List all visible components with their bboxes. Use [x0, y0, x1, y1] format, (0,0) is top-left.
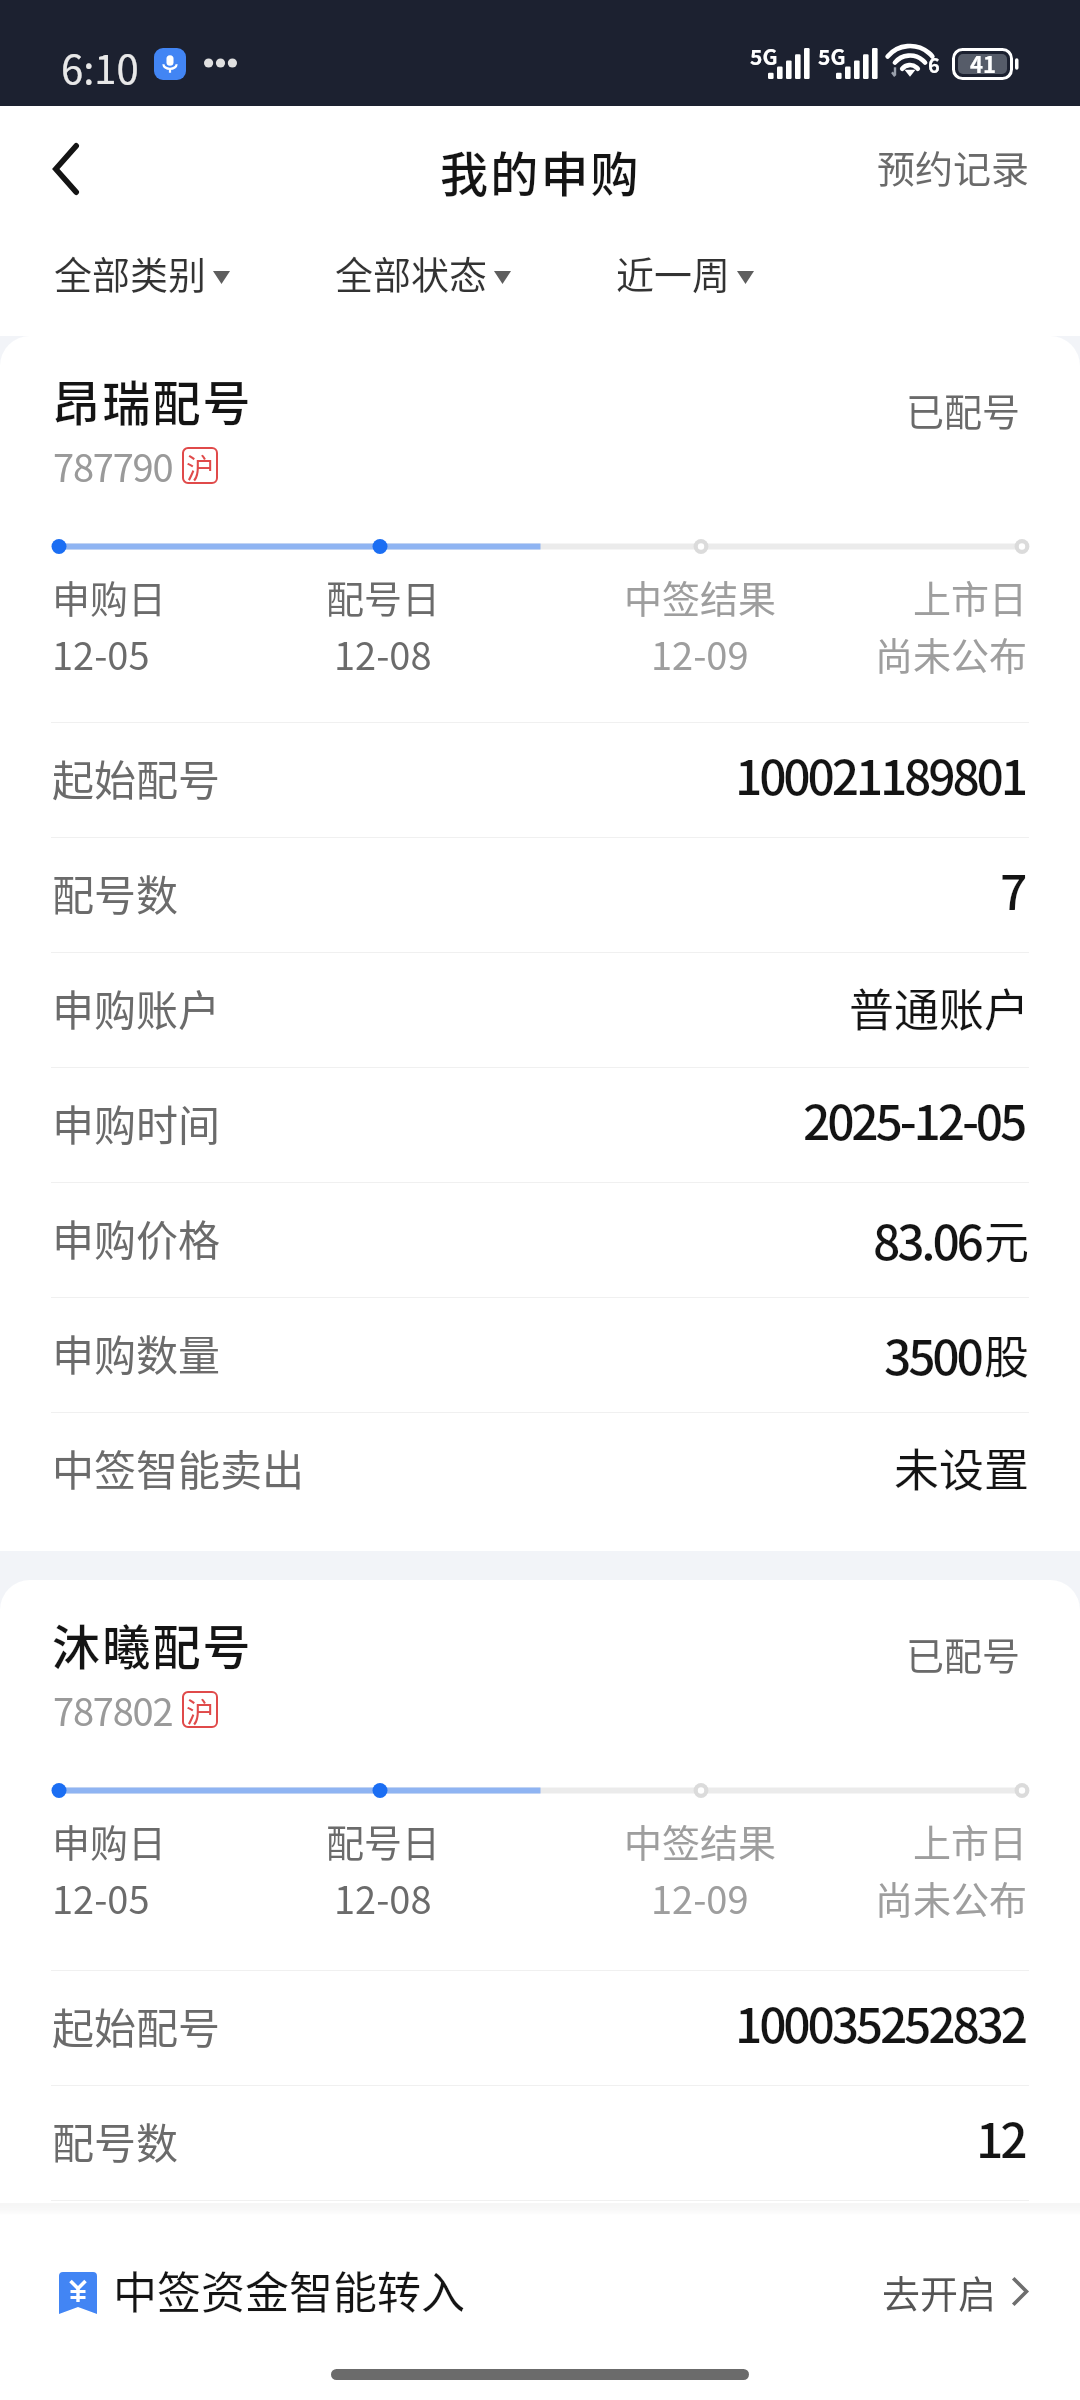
staticText: 12-08 [334, 626, 432, 681]
staticText: 申购数量 [52, 1322, 221, 1383]
button[interactable]: Back [0, 106, 132, 230]
staticText: 申购价格 [52, 1207, 221, 1268]
staticText: 沪 [186, 1691, 215, 1728]
staticText: 全部状态 [335, 245, 488, 300]
staticText: 申购账户 [52, 2225, 221, 2286]
staticText: 我的申购 [440, 136, 641, 206]
staticText: 沪 [186, 447, 215, 484]
staticText: 2025-12-05 [803, 1084, 1025, 1154]
staticText: 起始配号 [52, 747, 221, 808]
staticText: 全部类别 [54, 245, 207, 300]
staticText: 配号数 [52, 2110, 179, 2171]
staticText: 100021189801 [735, 739, 1025, 809]
staticText: 5G [750, 41, 778, 71]
staticText: 尚未公布 [875, 626, 1028, 681]
staticText: 配号日 [326, 569, 441, 624]
staticText: 6:10 [61, 38, 139, 96]
staticText: 去开启 [882, 2264, 997, 2319]
staticText: 配号日 [326, 1813, 441, 1868]
staticText: 中签智能卖出 [52, 1437, 305, 1498]
staticText: 12 [976, 2102, 1025, 2172]
staticText: 83.06 [873, 1204, 981, 1274]
staticText: 中签结果 [624, 1813, 777, 1868]
staticText: 申购时间 [52, 1092, 221, 1153]
staticText: 100035252832 [735, 1987, 1025, 2057]
staticText: 股 [984, 1322, 1030, 1387]
button[interactable]: 配号数 [0, 838, 1080, 952]
staticText: 3500 [884, 1319, 981, 1389]
staticText: 7 [1000, 854, 1025, 924]
staticText: 昂瑞配号 [52, 365, 253, 435]
staticText: 中签结果 [624, 569, 777, 624]
staticText: 12-09 [651, 626, 749, 681]
button[interactable]: 全部类别 [54, 245, 235, 300]
button[interactable]: 中签智能卖出 [0, 1413, 1080, 1527]
button[interactable]: 申购时间 [0, 1068, 1080, 1182]
staticText: 787790 [53, 438, 173, 493]
staticText: 上市日 [913, 1813, 1028, 1868]
staticText: 未设置 [894, 1435, 1030, 1500]
button[interactable]: 中签资金智能转入 [0, 2215, 1080, 2348]
staticText: 申购日 [52, 1813, 167, 1868]
button[interactable]: 申购数量 [0, 1298, 1080, 1412]
staticText: 12-09 [651, 1870, 749, 1925]
staticText: 起始配号 [52, 1995, 221, 2056]
staticText: 沐曦配号 [52, 1609, 253, 1679]
staticText: 6 [928, 50, 940, 79]
staticText: 元 [984, 1207, 1030, 1272]
button[interactable]: 全部状态 [335, 245, 516, 300]
staticText: 普通账户 [849, 2223, 1030, 2288]
staticText: 已配号 [906, 1626, 1021, 1681]
staticText: 已配号 [906, 382, 1021, 437]
staticText: 12-05 [52, 1870, 150, 1925]
button[interactable]: 近一周 [616, 245, 759, 300]
button[interactable]: 配号数 [0, 2086, 1080, 2200]
staticText: 787802 [53, 1682, 173, 1737]
staticText: 5G [818, 41, 846, 71]
button[interactable]: 预约记录 [877, 106, 1080, 230]
staticText: 预约记录 [877, 139, 1030, 194]
button[interactable]: 起始配号 [0, 1971, 1080, 2085]
staticText: 尚未公布 [875, 1870, 1028, 1925]
button[interactable]: 申购账户 [0, 2201, 1080, 2315]
staticText: 配号数 [52, 862, 179, 923]
button[interactable]: 申购账户 [0, 953, 1080, 1067]
button[interactable]: 申购价格 [0, 1183, 1080, 1297]
staticText: 12-05 [52, 626, 150, 681]
staticText: 41 [970, 47, 996, 79]
staticText: 12-08 [334, 1870, 432, 1925]
button[interactable]: 起始配号 [0, 723, 1080, 837]
staticText: 上市日 [913, 569, 1028, 624]
staticText: 中签资金智能转入 [113, 2258, 465, 2322]
staticText: 近一周 [616, 245, 731, 300]
staticText: 普通账户 [849, 975, 1030, 1040]
staticText: 申购账户 [52, 977, 221, 1038]
staticText: 申购日 [52, 569, 167, 624]
